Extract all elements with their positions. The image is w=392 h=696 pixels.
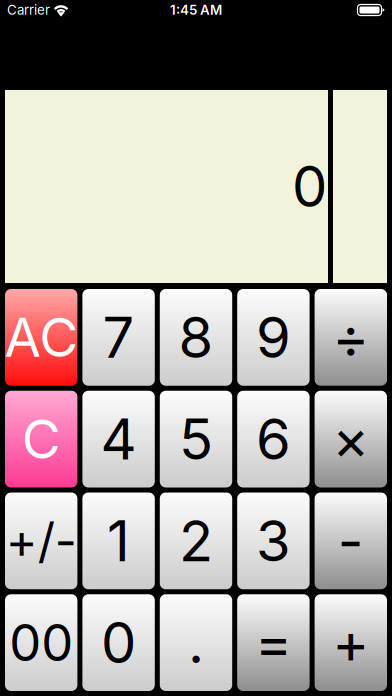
button[interactable]: 2: [160, 492, 232, 589]
button[interactable]: AC: [5, 289, 77, 386]
button[interactable]: +: [315, 594, 387, 691]
button[interactable]: =: [237, 594, 310, 691]
button[interactable]: .: [160, 594, 232, 691]
button[interactable]: 00: [5, 594, 77, 691]
staticText: +/-: [6, 512, 77, 570]
staticText: ×: [332, 405, 369, 473]
button[interactable]: 1: [82, 492, 155, 589]
staticText: ÷: [332, 303, 369, 371]
button[interactable]: 3: [237, 492, 310, 589]
button[interactable]: 7: [82, 289, 155, 386]
staticText: 9: [256, 303, 291, 371]
staticText: 5: [179, 405, 213, 473]
button[interactable]: ×: [315, 391, 387, 488]
staticText: 2: [179, 507, 213, 575]
staticText: 4: [101, 405, 137, 473]
button[interactable]: 8: [160, 289, 232, 386]
staticText: 00: [9, 612, 73, 673]
staticText: 1: [107, 507, 130, 575]
button[interactable]: +/-: [5, 492, 77, 589]
staticText: +: [332, 609, 369, 676]
staticText: 3: [256, 507, 291, 575]
button[interactable]: 0: [82, 594, 155, 691]
button[interactable]: 5: [160, 391, 232, 488]
button[interactable]: -: [315, 492, 387, 589]
staticText: 0: [101, 609, 136, 676]
button[interactable]: ÷: [315, 289, 387, 386]
staticText: Carrier: [7, 2, 50, 18]
staticText: =: [255, 609, 292, 676]
staticText: C: [22, 407, 61, 471]
staticText: -: [338, 507, 364, 575]
button[interactable]: C: [5, 391, 77, 488]
button[interactable]: 9: [237, 289, 310, 386]
staticText: 0: [292, 153, 327, 220]
staticText: .: [188, 609, 204, 676]
staticText: 1:45 AM: [170, 2, 222, 18]
staticText: 8: [178, 303, 213, 371]
staticText: AC: [4, 305, 78, 370]
button[interactable]: 6: [237, 391, 310, 488]
staticText: 7: [103, 303, 135, 371]
button[interactable]: 4: [82, 391, 155, 488]
staticText: 6: [256, 405, 291, 473]
